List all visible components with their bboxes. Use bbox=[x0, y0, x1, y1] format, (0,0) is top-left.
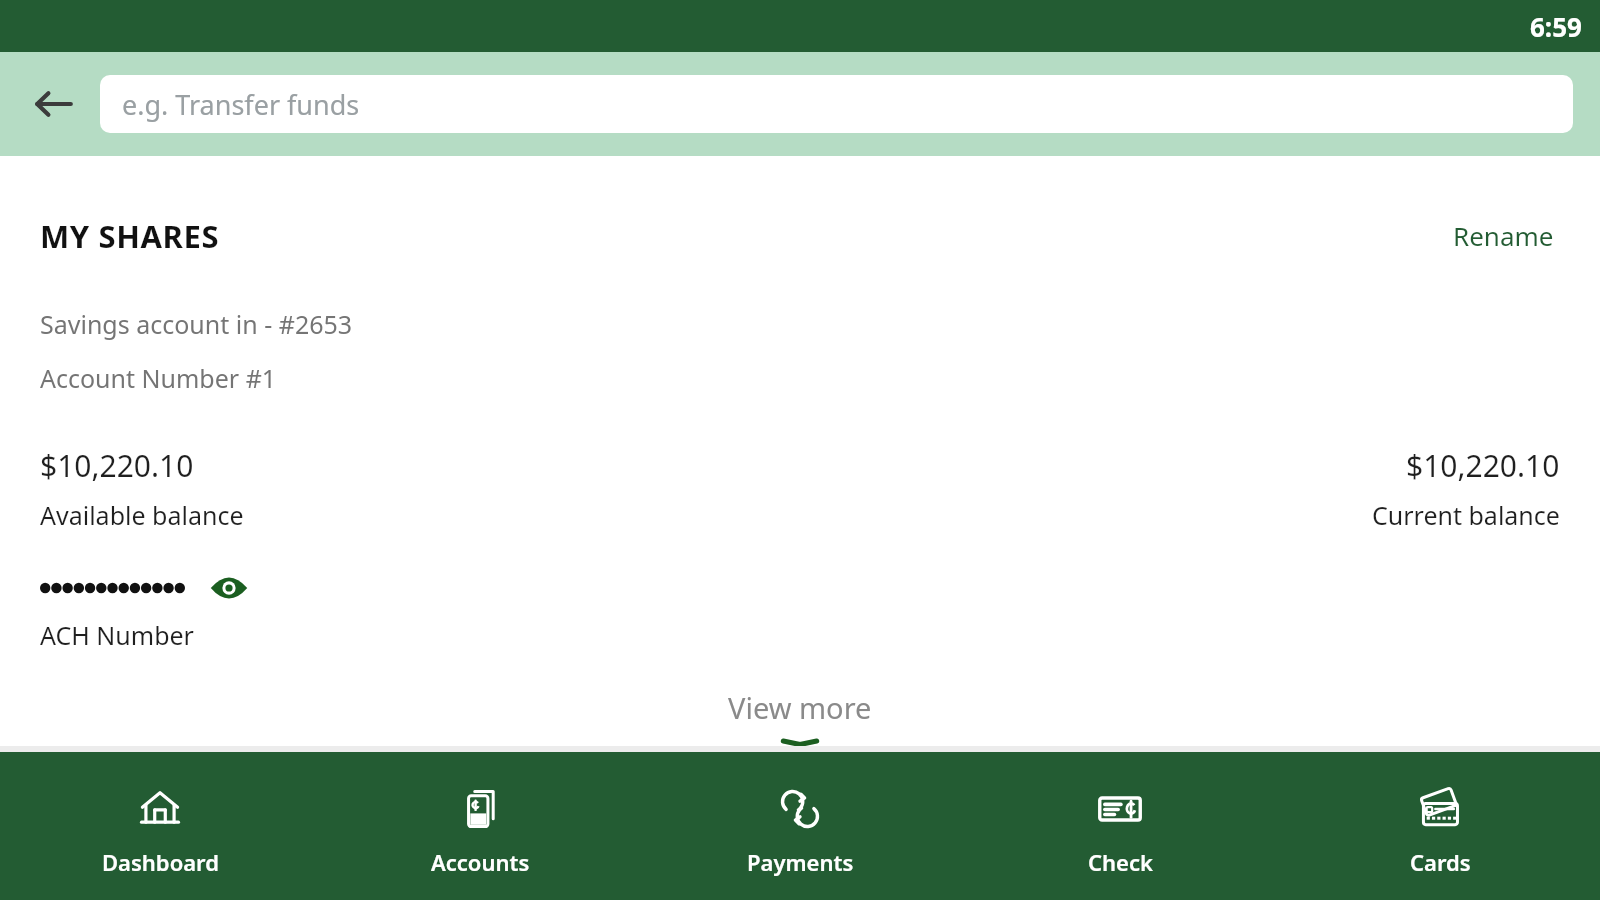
staticText: Payments bbox=[747, 847, 854, 877]
staticText: View more bbox=[728, 688, 872, 727]
staticText: Check bbox=[1088, 847, 1153, 877]
staticText: e.g. Transfer funds bbox=[122, 86, 360, 123]
staticText: $10,220.10 bbox=[1406, 445, 1560, 486]
button[interactable]: View more bbox=[0, 688, 1600, 746]
button[interactable]: Payments bbox=[640, 752, 960, 900]
staticText: $10,220.10 bbox=[40, 445, 194, 486]
staticText: ACH Number bbox=[40, 618, 194, 652]
staticText: Dashboard bbox=[102, 847, 219, 877]
button[interactable]: Cards bbox=[1280, 752, 1600, 900]
button[interactable]: Back bbox=[22, 72, 86, 136]
staticText: Cards bbox=[1410, 847, 1471, 877]
staticText: Current balance bbox=[1372, 498, 1560, 532]
staticText: Accounts bbox=[431, 847, 530, 877]
button[interactable]: Rename bbox=[1447, 214, 1560, 257]
staticText: 6:59 bbox=[1530, 9, 1582, 44]
button[interactable]: Dashboard bbox=[0, 752, 320, 900]
staticText: MY SHARES bbox=[40, 215, 220, 257]
button[interactable]: Accounts bbox=[320, 752, 640, 900]
staticText: Available balance bbox=[40, 498, 244, 532]
staticText: Account Number #1 bbox=[40, 361, 277, 395]
staticText: Savings account in - #2653 bbox=[40, 307, 353, 341]
button[interactable]: e.g. Transfer funds bbox=[100, 75, 1573, 133]
button[interactable]: Show ACH number bbox=[207, 566, 251, 610]
button[interactable]: Check bbox=[960, 752, 1280, 900]
staticText: Rename bbox=[1453, 218, 1554, 253]
